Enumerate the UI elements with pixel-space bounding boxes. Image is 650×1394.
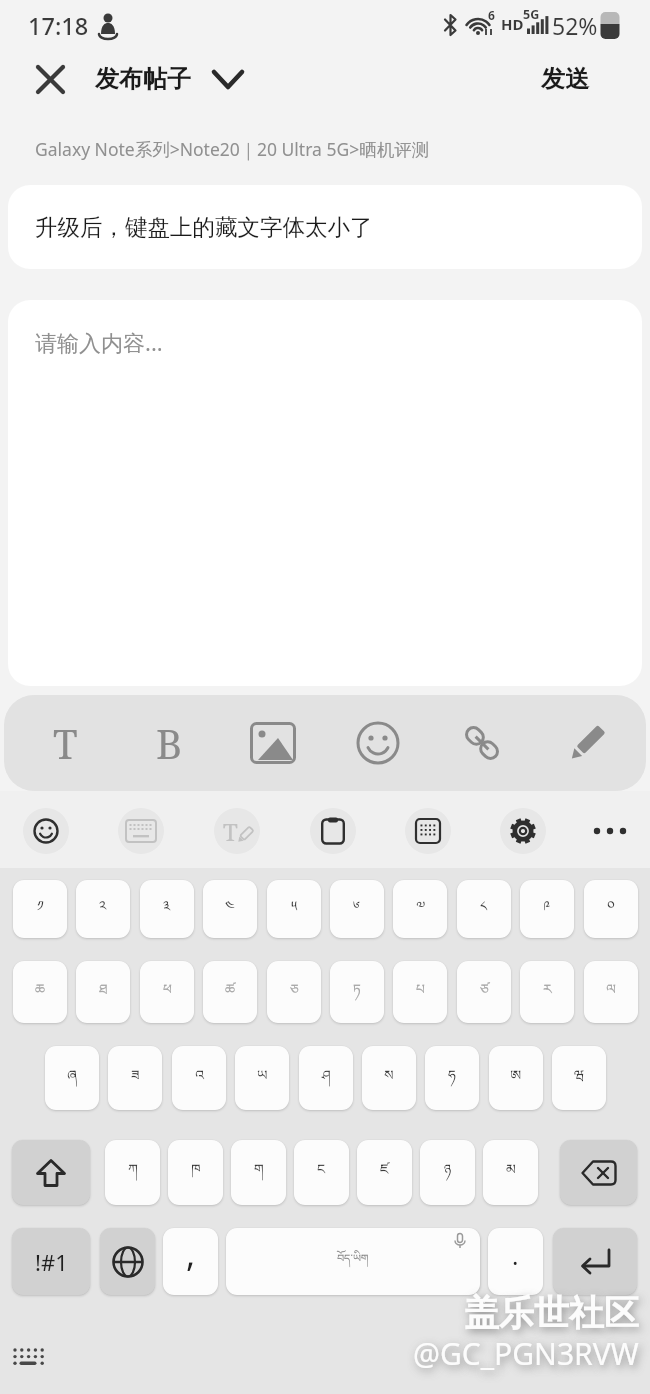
staticText: ཚ	[225, 973, 235, 1012]
button[interactable]: 升级后，键盘上的藏文字体太小了	[8, 185, 642, 269]
staticText: བོད་ཡིག	[337, 1246, 369, 1277]
button[interactable]: འ	[172, 1046, 226, 1110]
button[interactable]: ཞ	[45, 1046, 99, 1110]
staticText: འ	[195, 1059, 204, 1098]
staticText: !#1	[35, 1247, 68, 1277]
button[interactable]: ཚ	[203, 961, 257, 1023]
staticText: 发布帖子	[95, 64, 191, 94]
button[interactable]: ༦	[330, 880, 384, 938]
button[interactable]: ཟ	[108, 1046, 162, 1110]
staticText: ཧ	[448, 1059, 456, 1098]
button[interactable]: ༧	[393, 880, 447, 938]
button[interactable]: ཙ	[457, 961, 511, 1023]
staticText: ཨ	[510, 1059, 522, 1098]
button[interactable]	[560, 1140, 637, 1205]
button[interactable]: ཤ	[299, 1046, 353, 1110]
staticText: ཡ	[257, 1059, 268, 1098]
staticText: ཤ	[322, 1059, 331, 1098]
staticText: 6	[488, 7, 495, 23]
staticText: ༡	[37, 890, 44, 929]
staticText: ༣	[163, 890, 171, 929]
button[interactable]: མ	[483, 1140, 538, 1205]
button[interactable]: བོད་ཡིག	[226, 1228, 480, 1295]
button[interactable]: ག	[231, 1140, 286, 1205]
button[interactable]: ཧ	[425, 1046, 479, 1110]
button[interactable]: ཐ	[76, 961, 130, 1023]
staticText: .	[512, 1239, 519, 1272]
button[interactable]: ང	[294, 1140, 349, 1205]
staticText: ༧	[416, 890, 425, 929]
button[interactable]: T	[35, 705, 95, 781]
button[interactable]	[348, 705, 408, 781]
staticText: @GC_PGN3RVW	[413, 1333, 639, 1374]
button[interactable]: ༨	[457, 880, 511, 938]
staticText: ལ	[606, 973, 616, 1012]
button[interactable]: ༠	[584, 880, 638, 938]
staticText: 5G	[523, 6, 540, 23]
staticText: ཝ	[574, 1059, 585, 1098]
button[interactable]	[243, 705, 303, 781]
button[interactable]: ཆ	[13, 961, 67, 1023]
button[interactable]: ཕ	[140, 961, 194, 1023]
staticText: ཟ	[131, 1059, 140, 1098]
button[interactable]: 发送	[520, 54, 610, 104]
staticText: ༥	[291, 890, 298, 929]
button[interactable]: .	[488, 1228, 543, 1295]
button[interactable]	[500, 808, 546, 854]
button[interactable]: ༡	[13, 880, 67, 938]
button[interactable]	[118, 808, 164, 854]
staticText: ཞ	[67, 1059, 77, 1098]
staticText: ཕ	[163, 973, 172, 1012]
staticText: ཉ	[444, 1153, 452, 1192]
button[interactable]	[23, 808, 69, 854]
button[interactable]: !#1	[12, 1228, 90, 1295]
staticText: ཆ	[35, 973, 45, 1012]
staticText: ཁ	[191, 1153, 201, 1192]
button[interactable]: ཀ	[105, 1140, 160, 1205]
button[interactable]: ཝ	[552, 1046, 606, 1110]
button[interactable]	[452, 705, 512, 781]
button[interactable]: ཡ	[235, 1046, 289, 1110]
staticText: ༢	[99, 890, 107, 929]
button[interactable]: ལ	[584, 961, 638, 1023]
staticText: T	[53, 716, 78, 770]
button[interactable]: ༣	[140, 880, 194, 938]
staticText: མ	[506, 1153, 516, 1192]
button[interactable]: ཉ	[420, 1140, 475, 1205]
button[interactable]: པ	[393, 961, 447, 1023]
staticText: ༠	[607, 890, 615, 929]
staticText: ས	[384, 1059, 394, 1098]
button[interactable]: ༩	[520, 880, 574, 938]
button[interactable]: ཁ	[168, 1140, 223, 1205]
staticText: 发送	[541, 64, 589, 94]
button[interactable]: ཨ	[489, 1046, 543, 1110]
staticText: ཅ	[290, 973, 299, 1012]
button[interactable]	[100, 1228, 155, 1295]
button[interactable]: ༤	[203, 880, 257, 938]
button[interactable]	[588, 809, 632, 853]
button[interactable]: 发布帖子	[95, 54, 255, 104]
button[interactable]	[12, 1140, 90, 1205]
staticText: ཛ	[380, 1153, 389, 1192]
button[interactable]: 请输入内容...	[8, 300, 642, 686]
button[interactable]: ,	[163, 1228, 218, 1295]
staticText: ༦	[353, 890, 361, 929]
button[interactable]: ༢	[76, 880, 130, 938]
button[interactable]	[405, 808, 451, 854]
staticText: ང	[317, 1153, 326, 1192]
button[interactable]	[25, 54, 75, 104]
staticText: 52%	[552, 10, 598, 41]
button[interactable]: ས	[362, 1046, 416, 1110]
button[interactable]: ༥	[267, 880, 321, 938]
button[interactable]: ཛ	[357, 1140, 412, 1205]
button[interactable]	[310, 808, 356, 854]
button[interactable]	[556, 705, 616, 781]
staticText: ཏ	[353, 973, 361, 1012]
button[interactable]: ཏ	[330, 961, 384, 1023]
button[interactable]: B	[139, 705, 199, 781]
button[interactable]: ར	[520, 961, 574, 1023]
staticText: Galaxy Note系列>Note20｜20 Ultra 5G>晒机评测	[35, 137, 430, 161]
button[interactable]	[214, 808, 260, 854]
button[interactable]	[553, 1228, 637, 1295]
button[interactable]: ཅ	[267, 961, 321, 1023]
